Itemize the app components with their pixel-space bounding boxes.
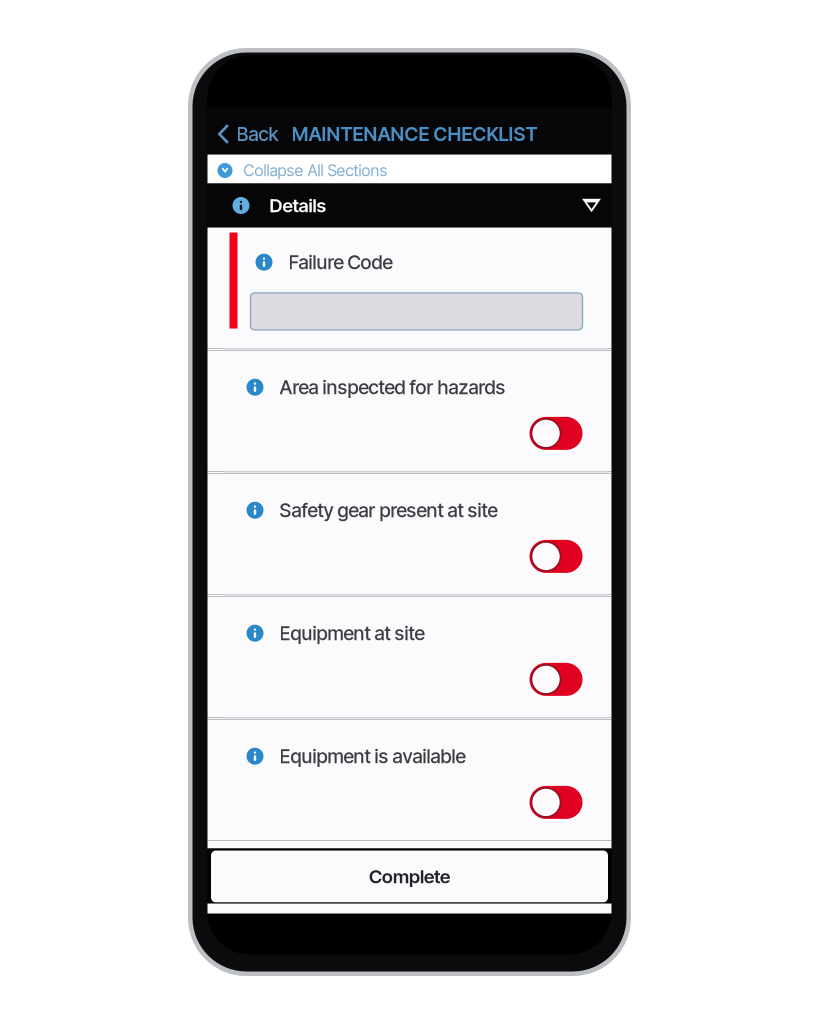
button[interactable] [250, 293, 582, 330]
button[interactable]: Area inspected for hazards [207, 350, 611, 471]
button[interactable]: Collapse All Sections [207, 154, 611, 183]
button[interactable]: Details [207, 183, 611, 227]
staticText: Area inspected for hazards [279, 375, 505, 399]
button[interactable]: Back [207, 109, 278, 153]
staticText: Details [269, 194, 326, 217]
button[interactable]: Equipment is available [207, 719, 611, 840]
staticText: MAINTENANCE CHECKLIST [291, 122, 537, 146]
button[interactable]: Safety gear present at site [207, 473, 611, 594]
staticText: Collapse All Sections [243, 161, 387, 180]
staticText: Equipment at site [279, 621, 424, 645]
staticText: Complete [369, 865, 450, 888]
staticText: Safety gear present at site [279, 498, 497, 522]
staticText: Equipment is available [279, 744, 465, 768]
button[interactable]: Complete [211, 850, 608, 902]
staticText: Failure Code [288, 250, 392, 274]
button[interactable]: Equipment at site [207, 596, 611, 717]
staticText: Back [236, 122, 278, 146]
